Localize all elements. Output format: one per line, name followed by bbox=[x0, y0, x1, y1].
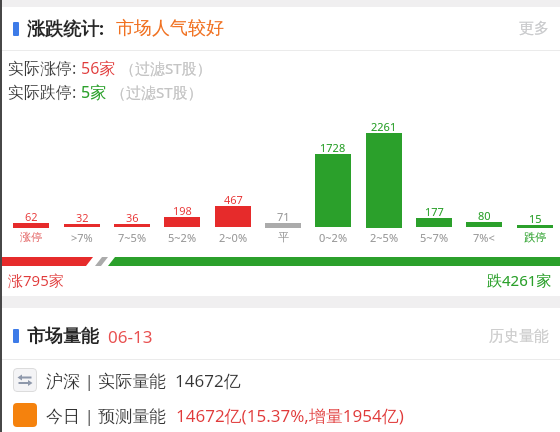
staticText: 2~0% bbox=[219, 230, 248, 245]
staticText: 平 bbox=[278, 230, 289, 244]
staticText: 177 bbox=[425, 204, 444, 219]
staticText: 62 bbox=[25, 209, 38, 224]
staticText: 实际涨停: bbox=[8, 57, 81, 79]
staticText: 36 bbox=[126, 210, 139, 225]
staticText: 跌停 bbox=[524, 230, 546, 244]
staticText: （过滤ST股） bbox=[116, 58, 212, 78]
staticText: 7%< bbox=[473, 230, 495, 245]
staticText: 市场人气较好 bbox=[116, 17, 224, 40]
staticText: 5家 bbox=[81, 81, 107, 103]
staticText: 1728 bbox=[320, 140, 346, 155]
staticText: 71 bbox=[277, 209, 290, 224]
staticText: 5~2% bbox=[168, 230, 197, 245]
staticText: 32 bbox=[76, 210, 89, 225]
staticText: 历史量能 bbox=[489, 327, 549, 346]
button[interactable]: 今日 | 预测量能 bbox=[0, 398, 560, 432]
staticText: 198 bbox=[173, 203, 192, 218]
staticText: 实际跌停: bbox=[8, 81, 81, 103]
staticText: >7% bbox=[71, 230, 93, 245]
staticText: 涨停 bbox=[20, 230, 42, 244]
staticText: 今日 | 预测量能 bbox=[46, 404, 176, 427]
staticText: 0~2% bbox=[319, 230, 348, 245]
staticText: 06-13 bbox=[108, 325, 153, 348]
staticText: 467 bbox=[224, 192, 243, 207]
staticText: 80 bbox=[478, 208, 491, 223]
staticText: 更多 bbox=[519, 19, 549, 38]
button[interactable]: 涨跌统计: bbox=[0, 7, 560, 50]
staticText: 5~7% bbox=[420, 230, 449, 245]
staticText: 涨跌统计: bbox=[27, 16, 105, 41]
staticText: 7~5% bbox=[118, 230, 147, 245]
staticText: 市场量能 bbox=[27, 325, 99, 348]
staticText: 2~5% bbox=[370, 230, 399, 245]
staticText: 2261 bbox=[371, 119, 397, 134]
staticText: 15 bbox=[529, 211, 542, 226]
staticText: 56家 bbox=[81, 57, 116, 79]
staticText: 涨795家 bbox=[8, 270, 64, 290]
staticText: 沪深 | 实际量能 14672亿 bbox=[46, 369, 241, 392]
staticText: 14672亿(15.37%,增量1954亿) bbox=[176, 404, 404, 427]
staticText: （过滤ST股） bbox=[107, 82, 203, 102]
button[interactable]: 市场量能 bbox=[0, 313, 560, 359]
button[interactable]: 沪深 | 实际量能 14672亿 bbox=[0, 361, 560, 399]
staticText: 跌4261家 bbox=[487, 270, 552, 290]
